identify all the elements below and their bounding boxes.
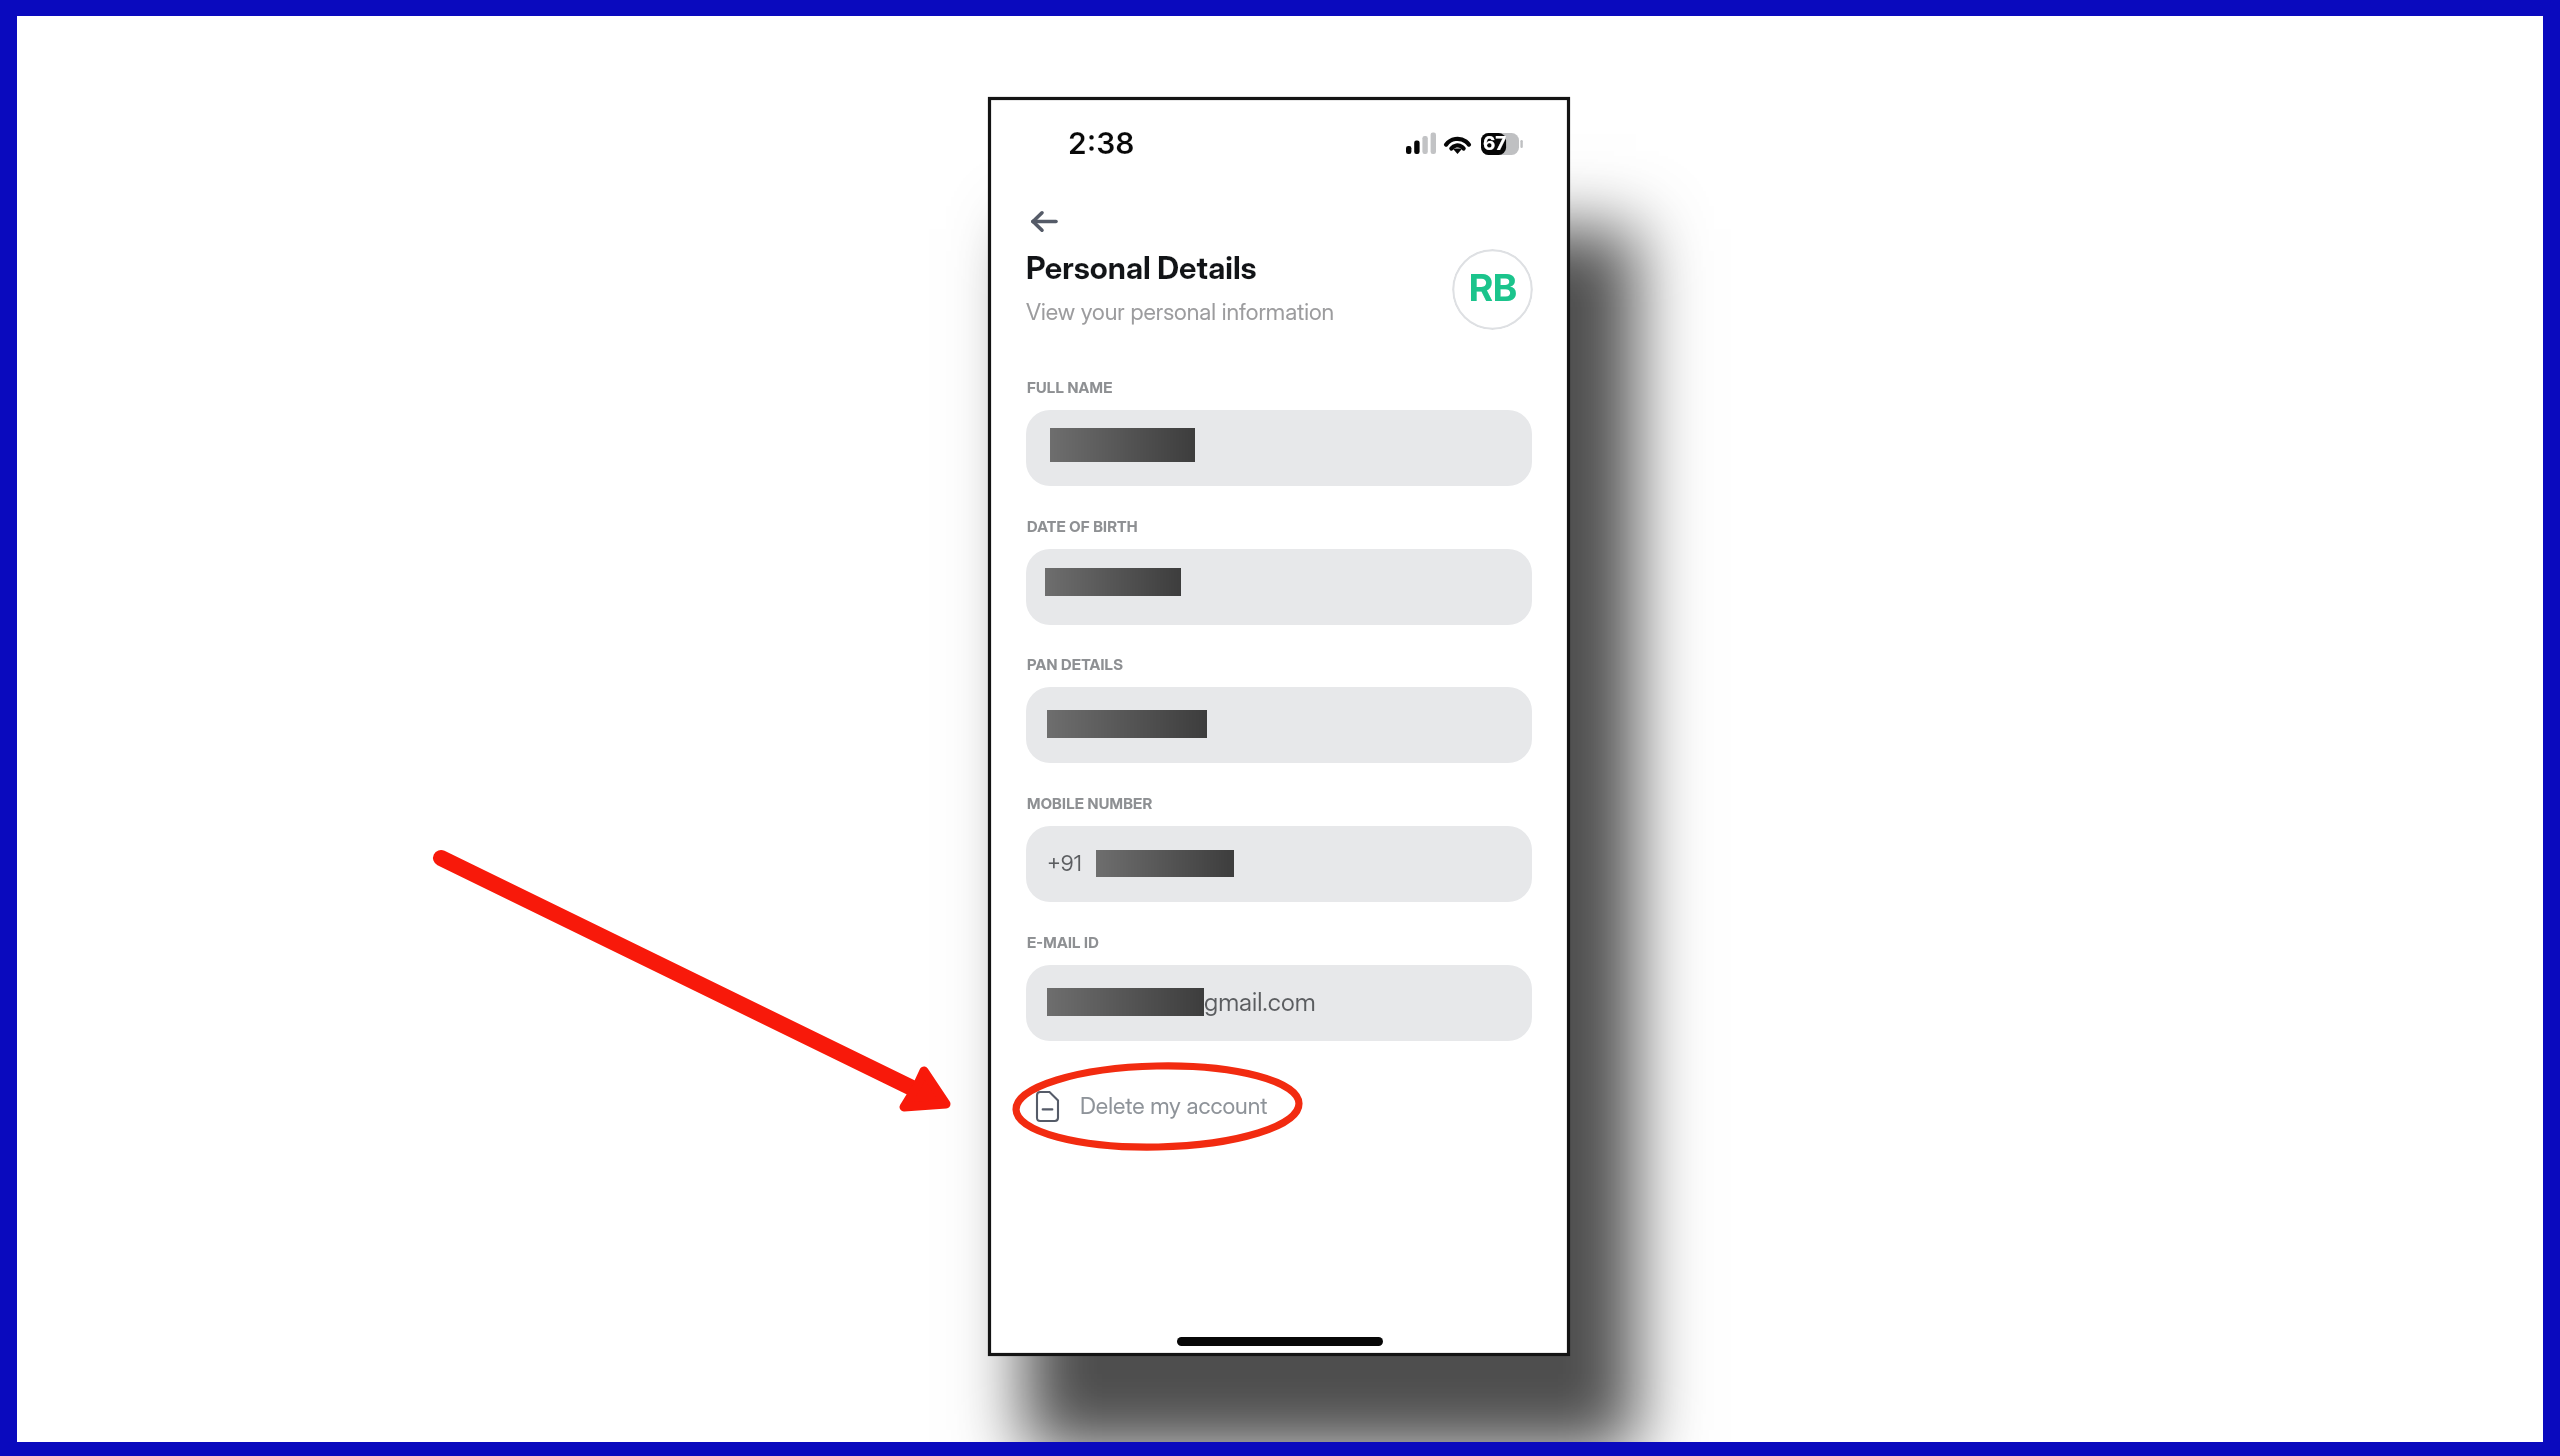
staticText: +91 [1047, 850, 1082, 877]
staticText: Delete my account [1080, 1092, 1268, 1120]
staticText: 2:38 [1068, 125, 1135, 161]
staticText: gmail.com [1204, 987, 1316, 1017]
button[interactable]: gmail.com [1026, 965, 1532, 1041]
button[interactable] [1026, 549, 1532, 625]
button[interactable]: Profile [1452, 249, 1533, 330]
staticText: E-MAIL ID [1027, 933, 1099, 951]
staticText: PAN DETAILS [1027, 655, 1124, 673]
staticText: MOBILE NUMBER [1027, 794, 1153, 812]
staticText: RB [1469, 265, 1517, 310]
button[interactable]: +91 [1026, 826, 1532, 902]
button[interactable] [1026, 410, 1532, 486]
button[interactable]: Back [1018, 195, 1070, 247]
button[interactable]: Delete my account [1029, 1079, 1268, 1133]
staticText: View your personal information [1026, 298, 1335, 326]
staticText: DATE OF BIRTH [1027, 517, 1138, 535]
staticText: 67 [1483, 132, 1507, 155]
staticText: Personal Details [1026, 249, 1257, 287]
button[interactable] [1026, 687, 1532, 763]
staticText: FULL NAME [1027, 378, 1113, 396]
